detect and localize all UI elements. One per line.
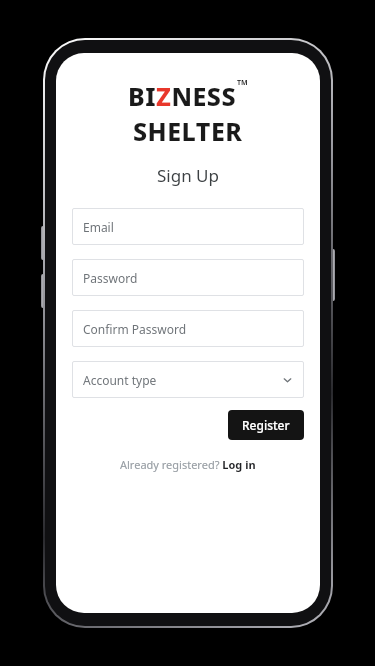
staticText: BIZNESS [128, 79, 237, 113]
button[interactable]: Register [228, 410, 304, 440]
staticText: Confirm Password [83, 321, 187, 337]
staticText: Email [83, 219, 114, 235]
staticText: SHELTER [133, 114, 243, 148]
staticText: Already registered? Log in [120, 457, 256, 472]
other: Expand account type [282, 374, 293, 385]
staticText: TM [237, 78, 248, 88]
button[interactable]: Account type [72, 361, 304, 398]
staticText: Account type [83, 372, 157, 388]
button[interactable]: Confirm Password [72, 310, 304, 347]
button[interactable]: Email [72, 208, 304, 245]
staticText: Register [242, 417, 290, 433]
staticText: Password [83, 270, 138, 286]
button[interactable]: Already registered? Log in [114, 454, 262, 475]
staticText: Sign Up [157, 164, 219, 187]
button[interactable]: Password [72, 259, 304, 296]
